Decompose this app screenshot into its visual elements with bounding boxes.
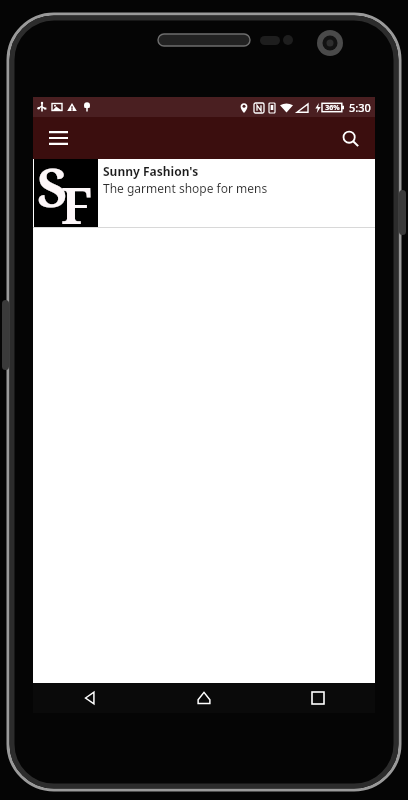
staticText: The garment shope for mens bbox=[103, 180, 268, 196]
staticText: 36% bbox=[325, 103, 340, 113]
button[interactable]: Open navigation menu bbox=[39, 119, 77, 157]
button[interactable]: S bbox=[33, 159, 375, 227]
button[interactable]: Search bbox=[331, 119, 369, 157]
staticText: S bbox=[37, 151, 68, 219]
button[interactable]: Back bbox=[33, 683, 147, 713]
staticText: Sunny Fashion's bbox=[103, 163, 199, 179]
staticText: F bbox=[61, 171, 93, 239]
button[interactable]: Home bbox=[147, 683, 261, 713]
button[interactable]: Recent apps bbox=[261, 683, 375, 713]
staticText: 5:30 bbox=[349, 100, 371, 115]
